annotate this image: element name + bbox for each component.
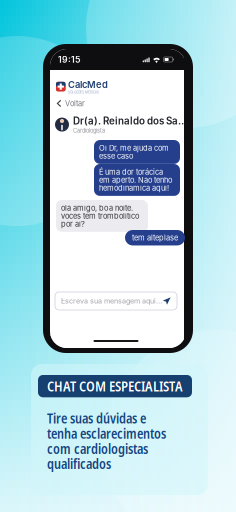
staticText: Escreva sua mensagem aqui… <box>61 297 162 305</box>
staticText: Dr(a). Reinaldo dos Sa… <box>73 115 187 127</box>
staticText: SOLUÇÕES MÉDICAS <box>68 90 99 94</box>
button[interactable]: Escreva sua mensagem aqui… <box>55 292 177 310</box>
staticText: olá amigo, boa noite. vocês tem trombolí… <box>61 203 139 228</box>
staticText: É uma dor torácica em aperto. Não tenho … <box>99 167 172 192</box>
staticText: Cardiologista <box>73 127 105 134</box>
staticText: CHAT COM ESPECIALISTA <box>47 377 183 395</box>
staticText: tem alteplase <box>132 233 178 242</box>
button[interactable]: Dr(a). Reinaldo dos Sa… <box>53 114 193 135</box>
button[interactable]: Voltar <box>52 97 89 110</box>
staticText: 19:15 <box>58 54 80 65</box>
staticText: Tire suas dúvidas e tenha esclarecimento… <box>47 409 166 473</box>
staticText: Oi Dr, me ajuda com esse caso <box>99 143 169 160</box>
staticText: Voltar <box>65 99 85 108</box>
staticText: CalcMed <box>68 79 108 90</box>
